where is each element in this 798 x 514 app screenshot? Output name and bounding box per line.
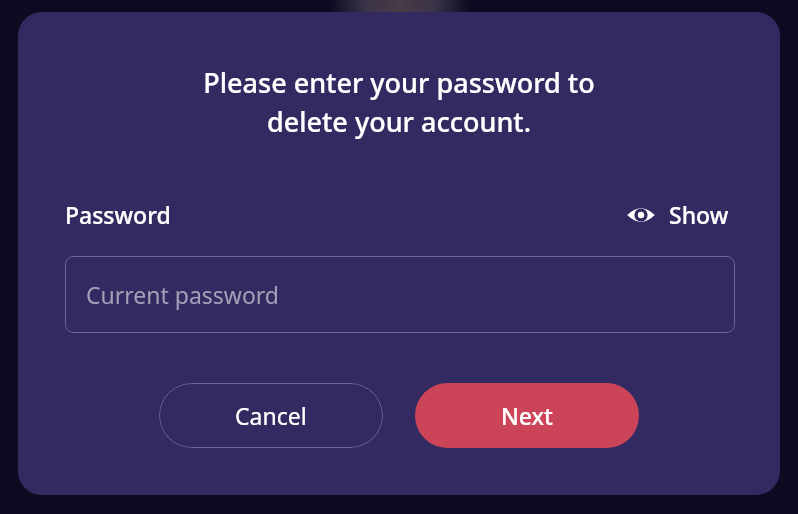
button[interactable]: Cancel [159,383,383,448]
staticText: Current password [86,279,280,310]
button[interactable]: Show password [622,195,733,234]
staticText: Password [65,199,171,230]
button[interactable]: Current password [65,256,735,333]
button[interactable]: Next [415,383,639,448]
other: Show password [626,204,656,226]
staticText: Show [669,199,729,230]
staticText: Next [501,400,553,431]
staticText: Cancel [235,400,307,431]
staticText: Please enter your password to delete you… [18,64,780,140]
